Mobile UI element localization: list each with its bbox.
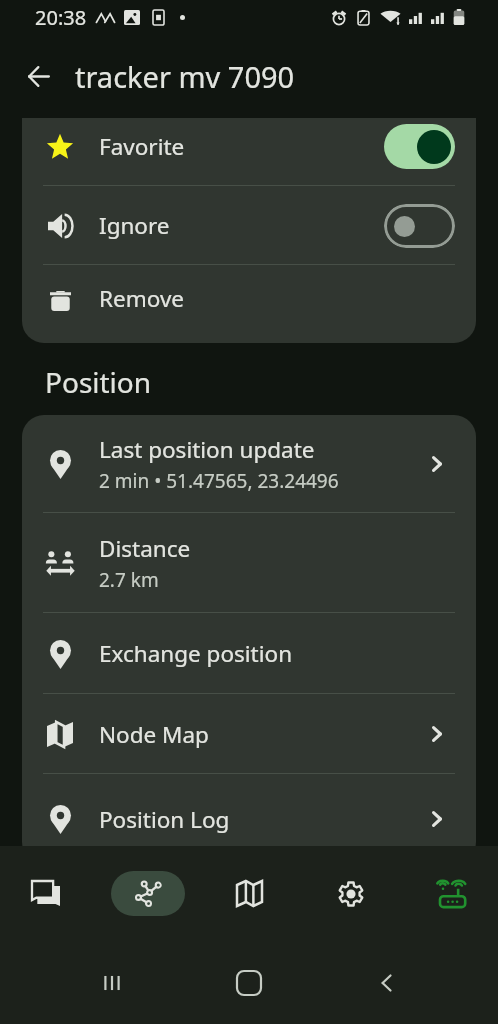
button[interactable]: Recent apps [86,957,138,1009]
staticText: Last position update [99,434,315,465]
staticText: Position Log [99,804,230,835]
staticText: Exchange position [99,638,293,669]
button[interactable]: Position Log [22,774,476,864]
staticText: Distance [99,533,191,564]
button[interactable]: Node Map [22,694,476,774]
button[interactable]: Last position update [22,415,476,513]
button[interactable]: Map [212,846,286,942]
staticText: tracker mv 7090 [75,57,295,96]
button[interactable]: Favorite [22,118,476,186]
button[interactable]: Favorite [384,124,455,169]
staticText: Node Map [99,719,209,750]
staticText: Ignore [99,210,170,241]
staticText: 2 min • 51.47565, 23.24496 [99,468,339,494]
button[interactable]: Exchange position [22,613,476,694]
button[interactable]: Settings [314,846,388,942]
staticText: Position [45,363,152,401]
button[interactable]: Nodes [111,846,185,942]
button[interactable]: Connections [415,846,489,942]
button[interactable]: Messages [9,846,83,942]
staticText: Remove [99,283,185,314]
button[interactable]: Remove [22,265,476,332]
button[interactable]: Navigate up [15,52,63,100]
button[interactable]: Ignore [22,186,476,265]
staticText: 2.7 km [99,567,159,593]
staticText: 20:38 [35,4,87,31]
button[interactable]: Distance [22,513,476,613]
button[interactable]: Ignore [384,204,455,248]
button[interactable]: Home [223,957,275,1009]
staticText: Favorite [99,131,185,162]
button[interactable]: Back [361,957,413,1009]
